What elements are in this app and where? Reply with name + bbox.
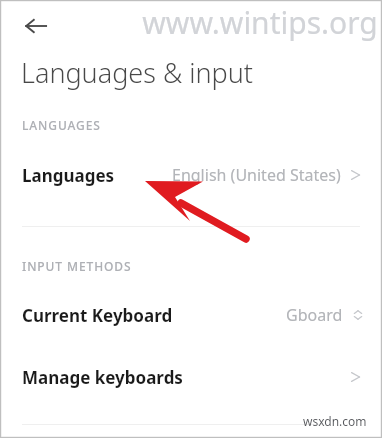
button[interactable]: Back <box>14 4 58 48</box>
staticText: Current Keyboard <box>22 304 173 327</box>
staticText: Languages <box>22 164 115 187</box>
staticText: English (United States) <box>172 164 341 186</box>
staticText: wsxdn.com <box>303 413 367 429</box>
button[interactable]: Current Keyboard <box>0 292 382 338</box>
staticText: INPUT METHODS <box>22 258 132 274</box>
button[interactable]: Manage keyboards <box>0 354 382 400</box>
staticText: Languages & input <box>21 54 254 91</box>
staticText: Manage keyboards <box>22 366 183 389</box>
staticText: www.wintips.org <box>140 2 380 43</box>
staticText: Gboard <box>286 304 343 326</box>
staticText: LANGUAGES <box>22 117 101 133</box>
button[interactable]: Languages <box>0 152 382 198</box>
